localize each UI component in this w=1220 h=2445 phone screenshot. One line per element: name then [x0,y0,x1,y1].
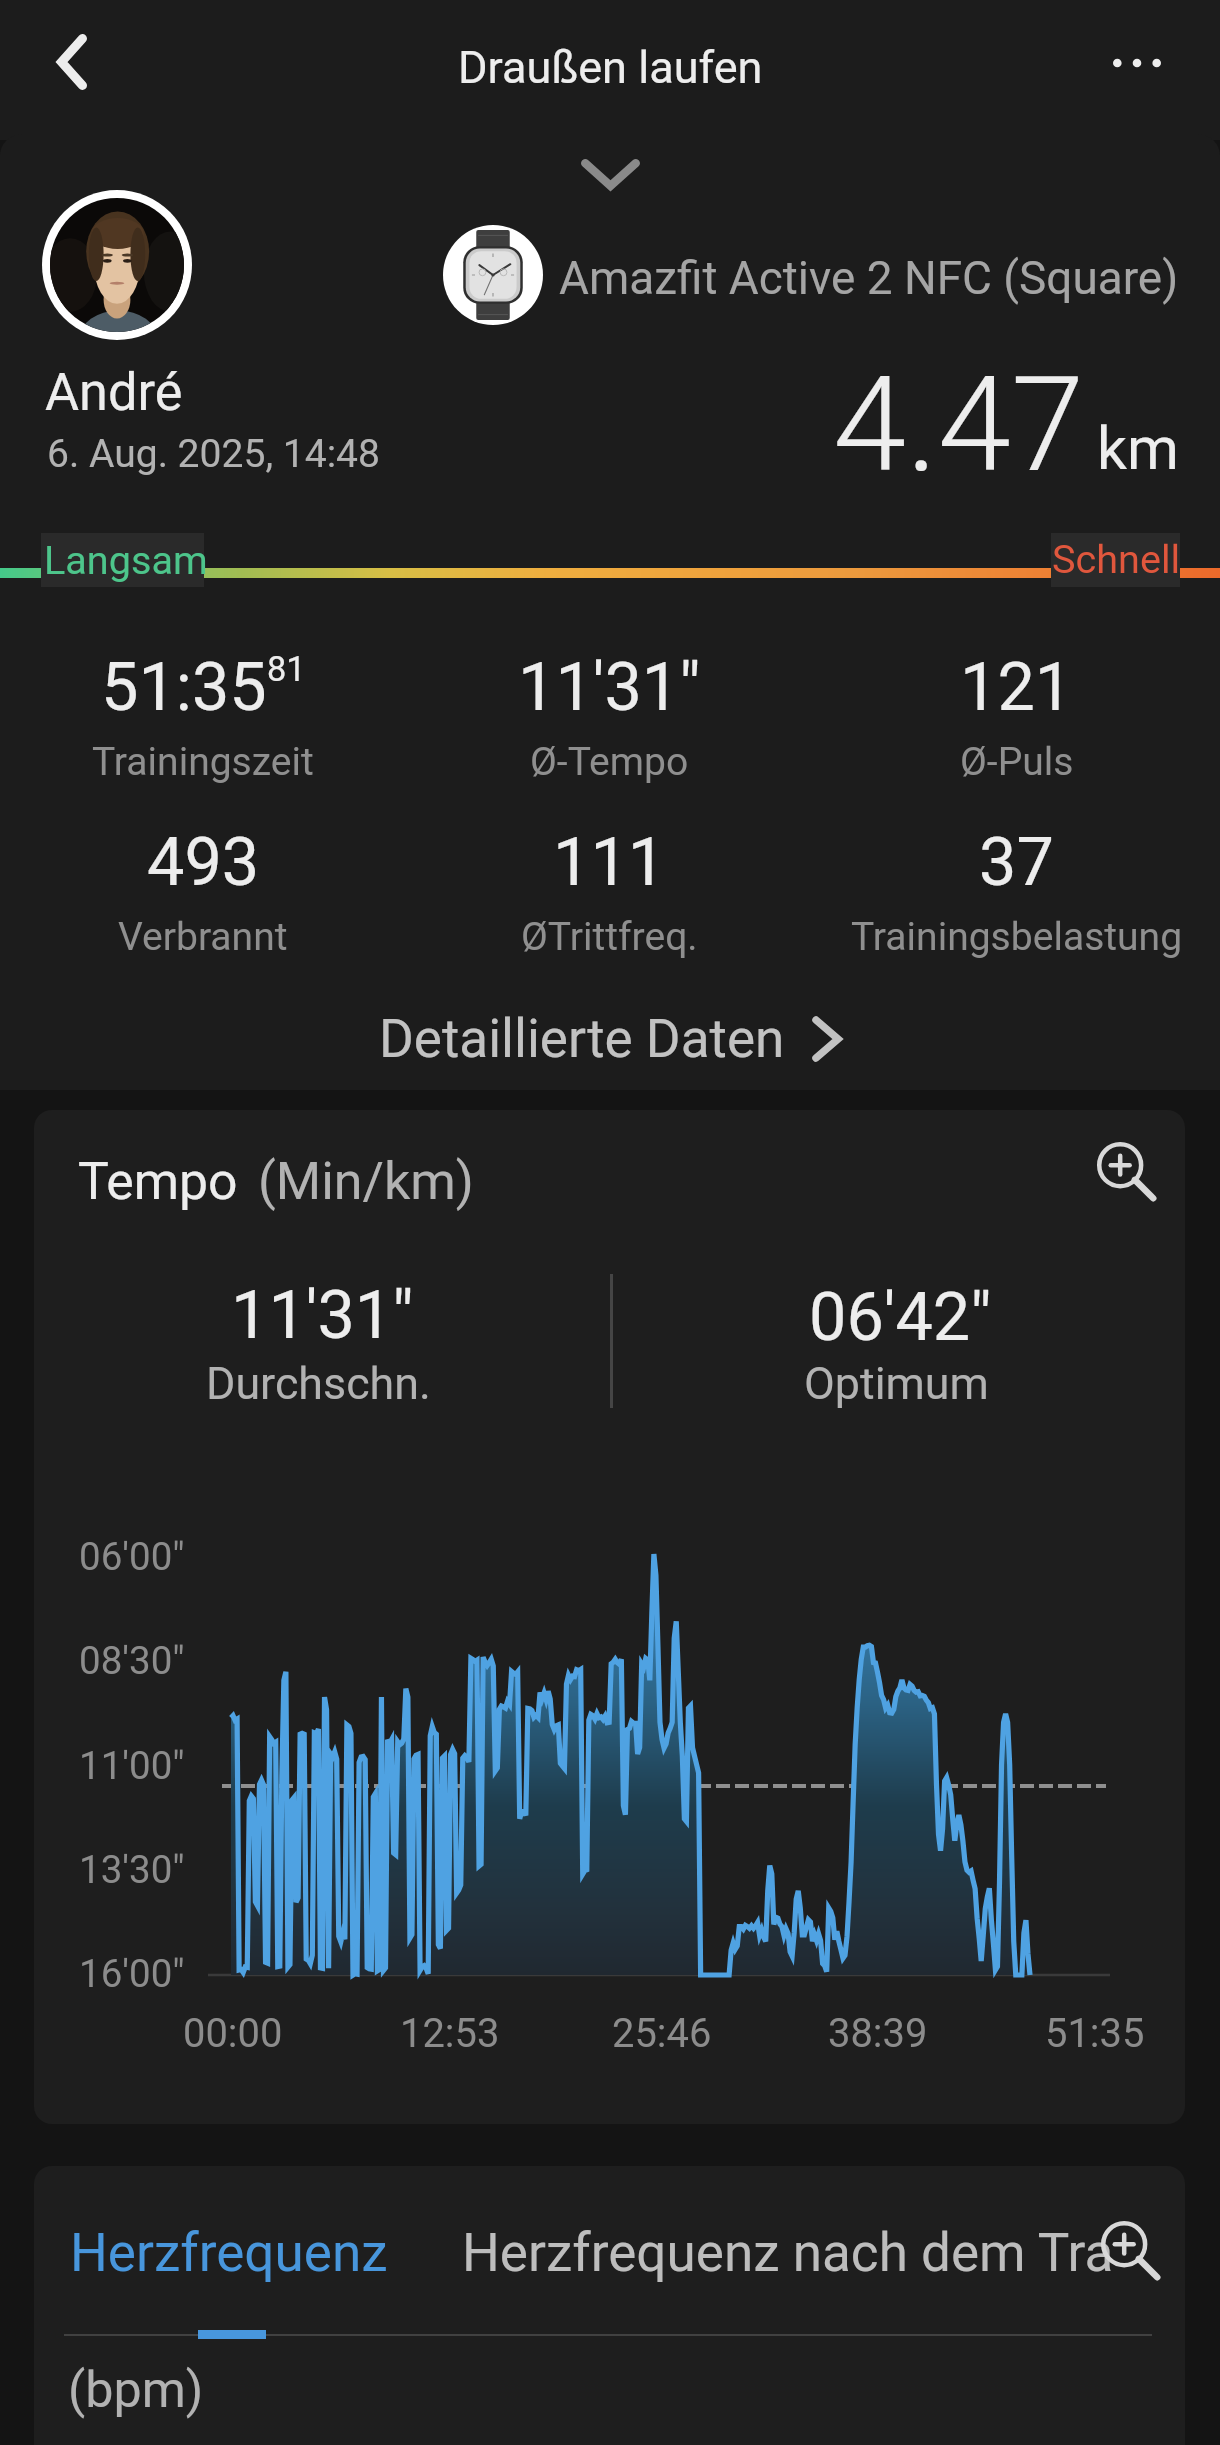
button[interactable]: Herzfrequenz nach dem Tra [462,2222,1114,2284]
staticText: Trainingsbelastung [851,914,1183,960]
staticText: 6. Aug. 2025, 14:48 [47,431,381,477]
staticText: Langsam [44,537,208,583]
button[interactable]: Zoom in [1084,2204,1174,2294]
staticText: 08'30" [79,1638,185,1683]
staticText: Amazfit Active 2 NFC (Square) [559,251,1179,305]
button[interactable]: More options [1094,20,1180,106]
staticText: 11'31" [518,648,701,726]
staticText: 06'00" [79,1534,185,1579]
staticText: Draußen laufen [458,41,763,94]
staticText: 81 [267,649,306,689]
staticText: 13'30" [79,1847,185,1892]
staticText: 51:35 [101,648,267,726]
staticText: Durchschn. [206,1357,431,1410]
staticText: Ø-Puls [960,739,1074,785]
button[interactable]: Back [29,19,115,105]
staticText: Detaillierte Daten [379,1008,785,1070]
staticText: (Min/km) [258,1151,474,1212]
staticText: 16'00" [79,1951,185,1996]
staticText: Verbrannt [118,914,288,960]
staticText: 25:46 [612,2010,712,2057]
staticText: Optimum [804,1357,989,1410]
staticText: 38:39 [828,2010,928,2057]
staticText: 11'00" [79,1743,185,1788]
staticText: km [1097,414,1179,483]
staticText: 06'42" [809,1278,992,1356]
staticText: ØTrittfreq. [521,914,698,960]
staticText: 11'31" [231,1276,414,1354]
staticText: 121 [960,648,1073,726]
button[interactable]: Zoom in [1080,1125,1170,1215]
staticText: 37 [979,823,1054,901]
button[interactable]: Herzfrequenz [70,2222,388,2284]
staticText: 00:00 [183,2010,283,2057]
staticText: Trainingszeit [92,739,314,785]
button[interactable]: Detaillierte Daten [379,1008,842,1070]
staticText: 111 [553,823,666,901]
staticText: (bpm) [68,2360,204,2419]
staticText: 12:53 [400,2010,500,2057]
staticText: Schnell [1052,536,1181,582]
staticText: André [45,362,183,423]
staticText: Ø-Tempo [530,739,689,785]
staticText: 493 [147,823,260,901]
staticText: Tempo [78,1151,238,1212]
staticText: 51:35 [1045,2010,1145,2057]
staticText: 4.47 [833,348,1085,503]
